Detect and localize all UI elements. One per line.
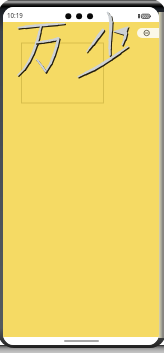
staticText: 10:19 bbox=[7, 11, 23, 19]
button[interactable]: Remove bbox=[137, 28, 159, 38]
